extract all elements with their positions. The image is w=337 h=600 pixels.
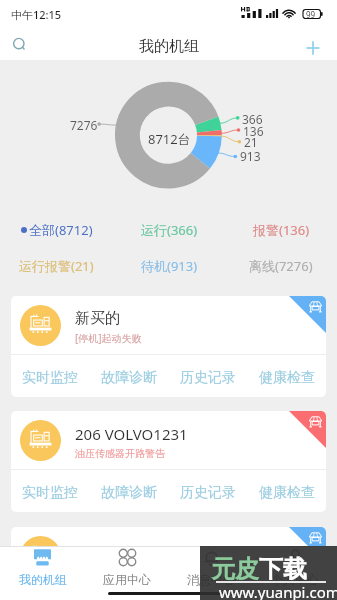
button[interactable]: 待机(913) — [113, 248, 225, 284]
staticText: 我的机组 — [19, 572, 67, 587]
button[interactable]: 健康检查 — [247, 470, 326, 512]
button[interactable]: 历史记录 — [168, 355, 247, 397]
button[interactable]: 全部(8712) — [0, 212, 113, 248]
staticText: 中午12:15 — [11, 7, 62, 22]
staticText: 历史记录 — [180, 369, 236, 387]
button[interactable]: 个人中心 — [253, 547, 337, 600]
staticText: 实时监控 — [22, 484, 78, 502]
button[interactable]: 故障诊断 — [89, 586, 168, 600]
staticText: [停机]起动失败 — [75, 331, 142, 345]
staticText: 元皮 — [211, 554, 259, 584]
staticText: 故障诊断 — [101, 588, 157, 600]
button[interactable]: 消息中心 — [169, 547, 253, 600]
staticText: 报警(136) — [253, 221, 310, 239]
staticText: 新买的 — [75, 309, 120, 328]
staticText: 全部(8712) — [29, 221, 93, 239]
staticText: 99 — [306, 9, 316, 20]
button[interactable]: 故障诊断 — [89, 470, 168, 512]
staticText: 历史记录 — [180, 484, 236, 502]
staticText: 实时监控 — [22, 369, 78, 387]
button[interactable]: 报警(136) — [225, 212, 337, 248]
staticText: 离线(7276) — [249, 257, 313, 275]
staticText: 下载 — [259, 554, 307, 584]
button[interactable]: 健康检查 — [247, 355, 326, 397]
button[interactable]: 新买的 — [11, 296, 326, 354]
button[interactable]: 我的机组 — [0, 547, 85, 600]
staticText: 运行(366) — [141, 221, 198, 239]
button[interactable]: 运行(366) — [113, 212, 225, 248]
staticText: 故障诊断 — [101, 484, 157, 502]
staticText: 366 — [242, 111, 263, 127]
staticText: 8712台 — [148, 130, 191, 148]
staticText: 我的机组 — [139, 37, 199, 56]
button[interactable]: 应用中心 — [85, 547, 169, 600]
button[interactable]: 搜索 — [9, 34, 33, 58]
staticText: 21 — [244, 134, 258, 150]
staticText: 健康检查 — [259, 484, 315, 502]
staticText: 消息中心 — [187, 572, 235, 587]
staticText: 206 VOLVO1231 — [75, 424, 188, 444]
button[interactable]: 离线(7276) — [225, 248, 337, 284]
staticText: 健康检查 — [259, 588, 315, 600]
staticText: 136 — [243, 123, 264, 139]
staticText: 油压传感器开路警告 — [75, 447, 165, 460]
button[interactable]: 实时监控 — [11, 355, 89, 397]
staticText: 个人中心 — [271, 572, 319, 587]
button[interactable]: 历史记录 — [168, 470, 247, 512]
staticText: 913 — [240, 148, 261, 164]
button[interactable]: 添加 — [301, 36, 325, 60]
staticText: 应用中心 — [103, 572, 151, 587]
staticText: www.yuanpi.com — [219, 582, 337, 600]
staticText: 历史记录 — [180, 588, 236, 600]
button[interactable]: 故障诊断 — [89, 355, 168, 397]
button[interactable]: 健康检查 — [247, 586, 326, 600]
staticText: 健康检查 — [259, 369, 315, 387]
button[interactable]: 历史记录 — [168, 586, 247, 600]
staticText: 故障诊断 — [101, 369, 157, 387]
staticText: 待机(913) — [141, 257, 198, 275]
button[interactable] — [11, 527, 326, 585]
button[interactable]: 运行报警(21) — [0, 248, 113, 284]
staticText: 运行报警(21) — [19, 257, 94, 275]
button[interactable]: 206 VOLVO1231 — [11, 411, 326, 469]
staticText: 7276 — [70, 117, 98, 133]
button[interactable]: 实时监控 — [11, 470, 89, 512]
